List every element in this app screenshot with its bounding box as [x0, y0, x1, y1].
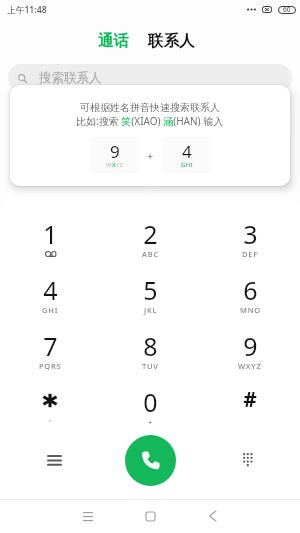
staticText: 可根据姓名拼音快速搜索联系人: [80, 101, 220, 114]
staticText: 3: [243, 217, 258, 251]
button[interactable]: 联系人: [143, 28, 200, 54]
staticText: 8: [143, 329, 158, 363]
staticText: 1: [43, 217, 58, 251]
staticText: TUV: [142, 361, 159, 371]
staticText: 4: [182, 140, 192, 163]
button[interactable]: 4: [162, 137, 211, 173]
button[interactable]: Call log: [36, 442, 72, 478]
staticText: 7: [43, 329, 58, 363]
staticText: 2: [143, 217, 158, 251]
button[interactable]: 5: [100, 273, 200, 319]
button[interactable]: 9: [90, 137, 139, 173]
staticText: ,: [49, 413, 52, 423]
staticText: 通话: [98, 31, 129, 51]
button[interactable]: 1: [0, 217, 100, 263]
button[interactable]: 9: [200, 329, 300, 375]
button[interactable]: 通话: [93, 28, 134, 54]
staticText: PQRS: [39, 361, 62, 371]
button[interactable]: Call: [125, 435, 176, 486]
button[interactable]: 搜索联系人: [8, 64, 292, 92]
staticText: 9: [110, 140, 120, 163]
button[interactable]: 4: [0, 273, 100, 319]
staticText: +: [147, 148, 154, 163]
staticText: WXYZ: [106, 161, 124, 169]
staticText: GHI: [42, 305, 59, 315]
button[interactable]: ,: [0, 385, 100, 431]
staticText: WXYZ: [238, 361, 262, 371]
button[interactable]: 0: [100, 385, 200, 431]
button[interactable]: 7: [0, 329, 100, 375]
staticText: 0: [143, 385, 158, 419]
staticText: ABC: [142, 249, 159, 259]
staticText: 60: [283, 5, 291, 14]
staticText: 4: [43, 273, 58, 307]
button[interactable]: 2: [100, 217, 200, 263]
staticText: GHI: [181, 161, 193, 169]
button[interactable]: Keypad: [230, 441, 266, 477]
staticText: 5: [143, 273, 158, 307]
button[interactable]: 3: [200, 217, 300, 263]
button[interactable]: 6: [200, 273, 300, 319]
button[interactable]: Home: [137, 503, 163, 529]
staticText: +: [148, 417, 154, 427]
staticText: 上午11:48: [7, 4, 47, 16]
staticText: 比如:搜索 笑(XIAO) 涵(HAN) 输入: [76, 114, 224, 128]
staticText: 9: [243, 329, 258, 363]
staticText: 搜索联系人: [39, 70, 102, 86]
staticText: 6: [243, 273, 258, 307]
button[interactable]: Back: [199, 503, 225, 529]
staticText: DEF: [242, 249, 259, 259]
staticText: MNO: [240, 305, 261, 315]
staticText: #: [243, 385, 257, 414]
button[interactable]: 8: [100, 329, 200, 375]
staticText: 联系人: [148, 31, 195, 51]
button[interactable]: #: [200, 385, 300, 431]
button[interactable]: Recents: [75, 503, 101, 529]
staticText: JKL: [144, 305, 158, 315]
